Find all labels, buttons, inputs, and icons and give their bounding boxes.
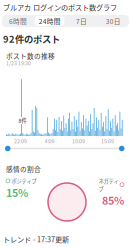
staticText: トレンド - 17:37更新 (3, 234, 69, 244)
staticText: ネガティブ (98, 177, 118, 192)
button[interactable]: 24時間 (34, 15, 66, 27)
button[interactable]: 7日 (65, 15, 97, 27)
staticText: 7日 (76, 16, 87, 26)
staticText: 22:09 (14, 137, 27, 145)
button[interactable]: 30日 (97, 15, 129, 27)
staticText: 感情の割合 (6, 164, 41, 174)
staticText: ポジティブ (11, 177, 36, 185)
staticText: 24時間 (39, 16, 61, 26)
staticText: 6時間 (9, 16, 27, 26)
button[interactable]: 6時間 (2, 15, 34, 27)
staticText: ポスト数の推移 (6, 51, 55, 61)
staticText: 85% (102, 192, 124, 208)
staticText: 30日 (106, 16, 121, 26)
staticText: ブルアカ ログインのポスト数グラフ (3, 2, 117, 12)
staticText: 15:09 (101, 137, 114, 145)
staticText: 1/23 19:30 (6, 59, 31, 67)
staticText: 15% (6, 185, 28, 200)
staticText: 10:09 (72, 137, 85, 145)
staticText: 4:09 (44, 137, 54, 145)
staticText: 8件 (18, 117, 26, 124)
staticText: 92件のポスト (3, 32, 60, 45)
